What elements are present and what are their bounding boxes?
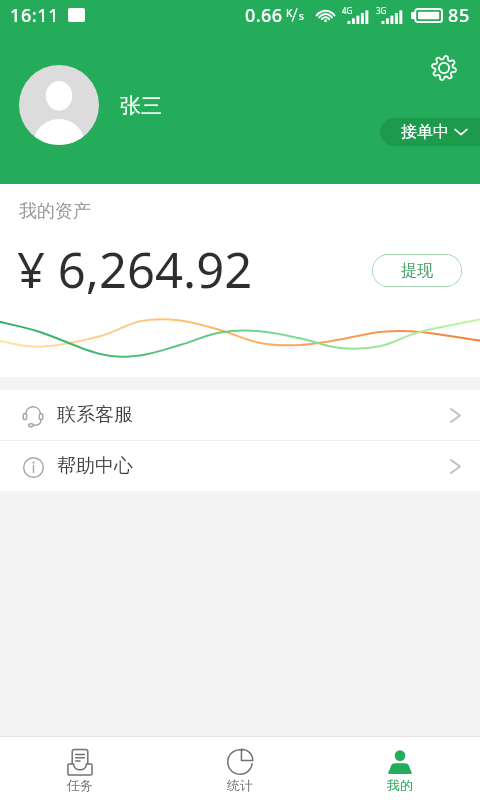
staticText: 3G: [376, 5, 387, 16]
staticText: 统计: [227, 777, 253, 793]
staticText: 4G: [342, 5, 353, 16]
button[interactable]: 提现: [372, 254, 462, 287]
staticText: s: [299, 9, 304, 23]
button[interactable]: 联系客服: [0, 390, 480, 440]
button[interactable]: 接单中: [380, 118, 480, 146]
staticText: 0.66: [245, 3, 283, 28]
button[interactable]: 统计: [160, 737, 320, 800]
button[interactable]: 我的: [320, 737, 480, 800]
staticText: 16:11: [10, 3, 60, 28]
button[interactable]: Settings: [424, 48, 464, 88]
staticText: 85: [448, 3, 470, 28]
staticText: 提现: [401, 261, 433, 281]
staticText: 张三: [120, 93, 162, 119]
staticText: 联系客服: [57, 403, 133, 427]
button[interactable]: 帮助中心: [0, 441, 480, 491]
staticText: 我的资产: [19, 200, 91, 223]
staticText: 任务: [67, 777, 93, 793]
staticText: 帮助中心: [57, 454, 133, 478]
staticText: 我的: [387, 777, 413, 793]
staticText: 接单中: [401, 122, 449, 142]
staticText: ¥ 6,264.92: [17, 236, 253, 303]
staticText: K: [286, 6, 293, 20]
button[interactable]: 任务: [0, 737, 160, 800]
